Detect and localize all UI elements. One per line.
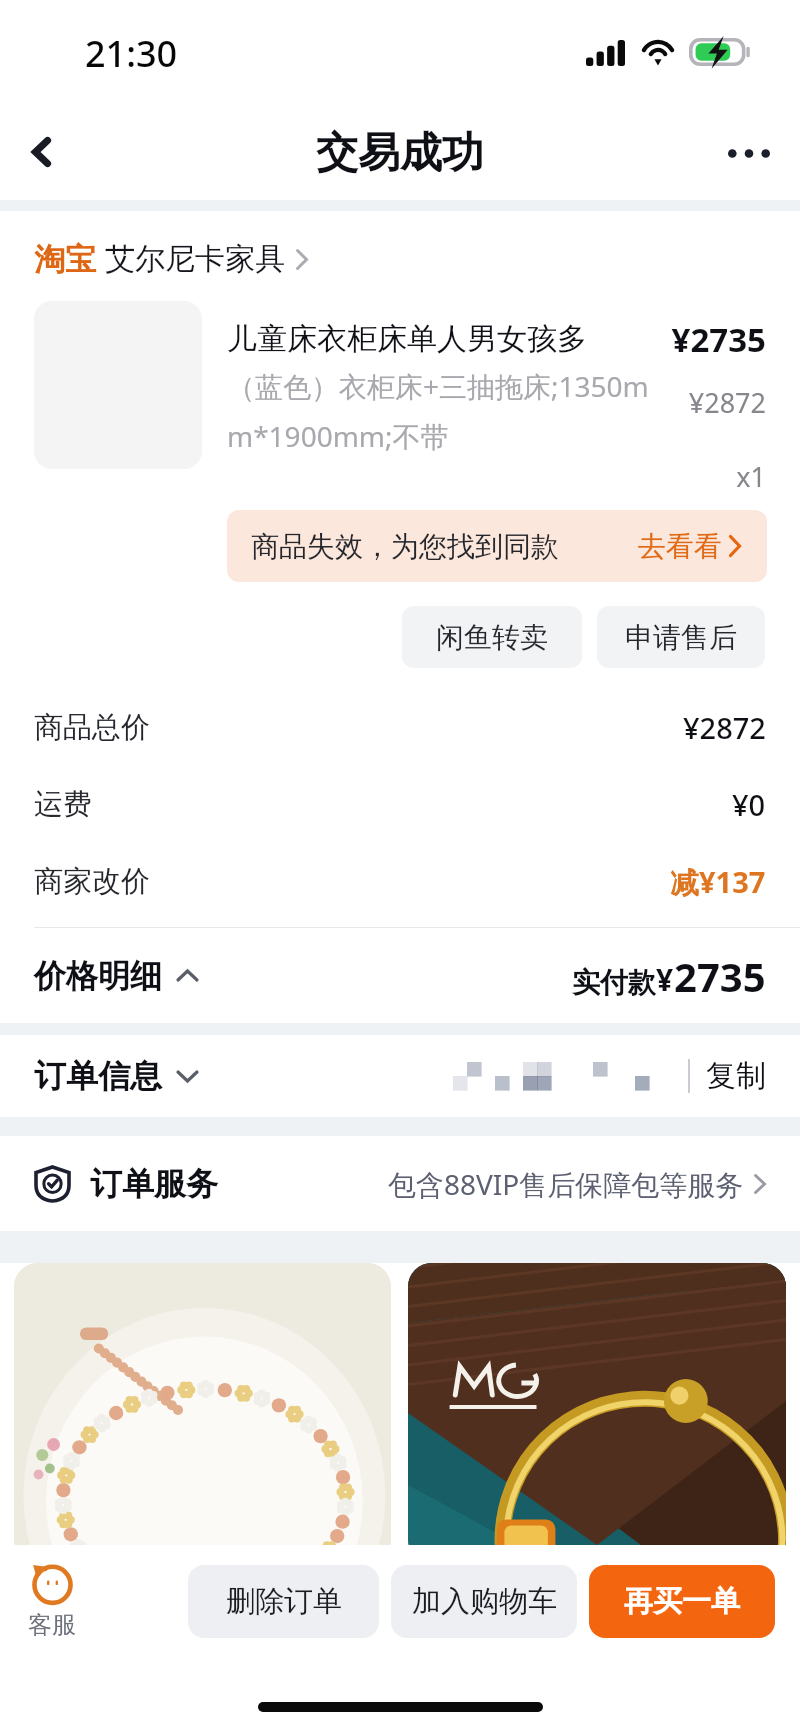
staticText: ¥2872	[560, 384, 766, 421]
staticText: 闲鱼转卖	[436, 620, 548, 655]
staticText: 订单服务	[90, 1164, 218, 1204]
staticText: 2735	[674, 949, 766, 1003]
button[interactable]: More options	[710, 110, 800, 200]
staticText: 商品总价	[34, 709, 150, 746]
button[interactable]: 订单服务	[0, 1136, 800, 1231]
button[interactable]: 申请售后	[597, 606, 765, 668]
button[interactable]: 闲鱼转卖	[402, 606, 582, 668]
button[interactable]: 删除订单	[188, 1565, 379, 1638]
staticText: 客服	[28, 1610, 76, 1640]
staticText: 去看看	[638, 529, 722, 564]
button[interactable]: 加入购物车	[391, 1565, 577, 1638]
staticText: 减¥137	[670, 862, 766, 902]
staticText: ¥2872	[683, 708, 766, 747]
staticText: 包含88VIP售后保障包等服务	[388, 1165, 744, 1203]
staticText: 运费	[34, 786, 92, 823]
button[interactable]: 价格明细	[0, 928, 800, 1023]
button[interactable]: 再买一单	[589, 1565, 775, 1638]
staticText: 艾尔尼卡家具	[105, 240, 285, 278]
staticText: 商品失效，为您找到同款	[251, 529, 559, 564]
button[interactable]: 商品失效，为您找到同款	[227, 510, 767, 582]
staticText: ¥	[656, 959, 674, 1000]
staticText: 订单信息	[34, 1056, 162, 1096]
staticText: ¥0	[732, 785, 766, 824]
staticText: 淘宝	[34, 240, 96, 279]
staticText: （蓝色）衣柜床+三抽拖床;1350m	[227, 367, 649, 405]
button[interactable]: 淘宝	[0, 211, 800, 291]
staticText: x1	[560, 458, 766, 495]
staticText: 再买一单	[624, 1583, 740, 1620]
staticText: m*1900mm;不带	[227, 417, 449, 455]
staticText: 价格明细	[34, 956, 162, 996]
staticText: 交易成功	[316, 127, 484, 180]
button[interactable]: 订单信息	[34, 1056, 199, 1096]
button[interactable]: Back	[0, 110, 84, 200]
button[interactable]	[14, 1263, 391, 1563]
button[interactable]: Customer service	[10, 1562, 94, 1640]
staticText: 复制	[706, 1057, 766, 1095]
staticText: 实付款	[572, 965, 656, 1000]
button[interactable]	[408, 1263, 786, 1563]
staticText: 申请售后	[625, 620, 737, 655]
staticText: 商家改价	[34, 863, 150, 900]
staticText: 21:30	[85, 29, 178, 78]
staticText: 加入购物车	[412, 1583, 557, 1620]
staticText: 儿童床衣柜床单人男女孩多	[227, 320, 587, 358]
button[interactable]: 复制	[706, 1057, 766, 1095]
staticText: ¥2735	[560, 317, 766, 362]
staticText: 删除订单	[226, 1583, 342, 1620]
